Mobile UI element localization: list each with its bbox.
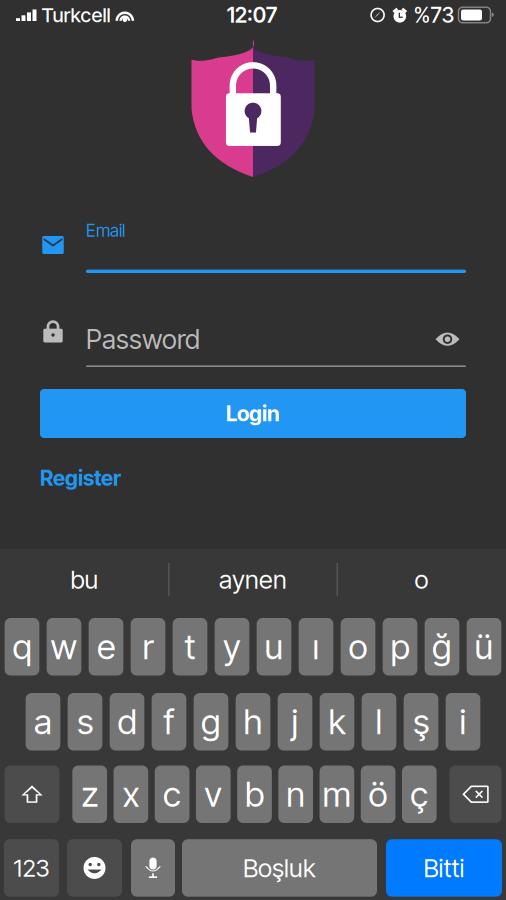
staticText: p xyxy=(390,626,409,668)
button[interactable]: h xyxy=(236,693,270,750)
staticText: ğ xyxy=(432,626,452,668)
button[interactable]: t xyxy=(173,618,207,675)
staticText: k xyxy=(328,701,345,743)
button[interactable]: k xyxy=(320,693,354,750)
button[interactable]: ş xyxy=(404,693,438,750)
staticText: q xyxy=(12,626,31,668)
button[interactable]: n xyxy=(278,765,313,823)
button[interactable]: 123 xyxy=(4,839,59,897)
button[interactable]: Register xyxy=(40,462,121,494)
button[interactable]: Delete xyxy=(449,765,501,823)
staticText: ü xyxy=(474,626,493,668)
staticText: 123 xyxy=(13,853,49,882)
staticText: o xyxy=(348,626,367,668)
staticText: c xyxy=(163,773,181,815)
button[interactable]: c xyxy=(155,765,189,823)
staticText: Boşluk xyxy=(243,853,316,883)
button[interactable]: Show password xyxy=(435,331,466,348)
staticText: g xyxy=(201,701,221,743)
button[interactable]: Emoji xyxy=(67,839,122,897)
staticText: w xyxy=(50,626,77,668)
staticText: d xyxy=(117,701,136,743)
button[interactable]: ı xyxy=(299,618,333,675)
staticText: Password xyxy=(86,323,200,355)
button[interactable]: s xyxy=(68,693,102,750)
staticText: j xyxy=(291,701,298,743)
staticText: i xyxy=(459,701,466,743)
button[interactable]: ö xyxy=(361,765,395,823)
staticText: h xyxy=(243,701,262,743)
staticText: 12:07 xyxy=(227,2,278,28)
staticText: aynen xyxy=(219,564,287,595)
staticText: a xyxy=(34,701,52,743)
button[interactable]: aynen xyxy=(169,549,336,610)
button[interactable]: y xyxy=(215,618,249,675)
button[interactable]: l xyxy=(362,693,396,750)
button[interactable]: i xyxy=(446,693,480,750)
staticText: v xyxy=(204,773,222,815)
staticText: bu xyxy=(71,564,99,595)
staticText: ö xyxy=(369,773,388,815)
button[interactable]: d xyxy=(110,693,144,750)
staticText: r xyxy=(142,626,153,668)
button[interactable]: q xyxy=(5,618,39,675)
button[interactable]: j xyxy=(278,693,312,750)
staticText: e xyxy=(97,626,115,668)
staticText: f xyxy=(163,701,174,743)
staticText: %73 xyxy=(413,2,454,28)
staticText: s xyxy=(77,701,93,743)
button[interactable]: x xyxy=(114,765,148,823)
button[interactable]: Dictation xyxy=(131,839,175,897)
staticText: ş xyxy=(413,701,429,743)
button[interactable]: z xyxy=(72,765,107,823)
staticText: ç xyxy=(410,773,428,815)
staticText: Login xyxy=(226,401,280,426)
button[interactable]: w xyxy=(47,618,81,675)
staticText: ı xyxy=(312,626,319,668)
button[interactable]: ç xyxy=(402,765,437,823)
staticText: Turkcell xyxy=(41,3,110,27)
button[interactable]: o xyxy=(338,549,505,610)
staticText: o xyxy=(414,564,428,595)
button[interactable]: r xyxy=(131,618,165,675)
button[interactable]: f xyxy=(152,693,186,750)
button[interactable]: Bitti xyxy=(386,839,502,897)
staticText: b xyxy=(245,773,264,815)
staticText: Email xyxy=(86,220,125,241)
staticText: x xyxy=(122,773,139,815)
button[interactable]: g xyxy=(194,693,228,750)
button[interactable]: ü xyxy=(467,618,501,675)
button[interactable]: a xyxy=(26,693,60,750)
button[interactable]: ğ xyxy=(425,618,459,675)
staticText: y xyxy=(223,626,241,668)
button[interactable]: Shift xyxy=(4,765,59,823)
button[interactable]: o xyxy=(341,618,375,675)
button[interactable]: v xyxy=(196,765,231,823)
staticText: z xyxy=(81,773,98,815)
staticText: l xyxy=(375,701,382,743)
staticText: n xyxy=(286,773,305,815)
button[interactable]: p xyxy=(383,618,417,675)
button[interactable]: b xyxy=(237,765,272,823)
button[interactable]: Login xyxy=(40,389,466,438)
button[interactable]: m xyxy=(320,765,354,823)
button[interactable]: u xyxy=(257,618,291,675)
staticText: t xyxy=(184,626,195,668)
staticText: Register xyxy=(40,465,121,491)
staticText: m xyxy=(322,773,351,815)
staticText: u xyxy=(264,626,283,668)
button[interactable]: bu xyxy=(1,549,168,610)
button[interactable]: e xyxy=(89,618,123,675)
staticText: Bitti xyxy=(423,853,464,883)
button[interactable]: Boşluk xyxy=(182,839,377,897)
